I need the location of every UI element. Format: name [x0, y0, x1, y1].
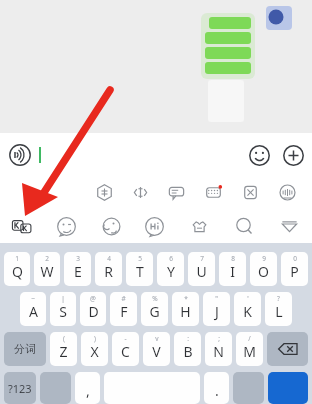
- button[interactable]: 3: [64, 252, 91, 286]
- staticText: ;: [218, 334, 220, 343]
- button[interactable]: ': [234, 292, 261, 326]
- button[interactable]: ): [81, 332, 108, 366]
- button[interactable]: Sticker tool 1: [0, 209, 44, 243]
- button[interactable]: 7: [188, 252, 215, 286]
- staticText: :: [187, 334, 189, 343]
- button[interactable]: ~: [20, 292, 46, 326]
- button[interactable]: Tool 4: [195, 177, 232, 207]
- staticText: S: [59, 302, 67, 321]
- button[interactable]: 6: [157, 252, 184, 286]
- button[interactable]: Sticker tool 4: [132, 209, 177, 243]
- button[interactable]: -: [112, 332, 139, 366]
- staticText: ': [247, 294, 249, 303]
- button[interactable]: Tool 2: [122, 177, 158, 207]
- button[interactable]: v: [143, 332, 170, 366]
- staticText: ?: [277, 294, 280, 303]
- staticText: 5: [138, 254, 142, 263]
- staticText: L: [275, 302, 283, 321]
- button[interactable]: 0: [281, 252, 308, 286]
- staticText: 9: [262, 254, 266, 263]
- button[interactable]: ,: [75, 372, 100, 404]
- staticText: ~: [31, 294, 35, 303]
- staticText: I: [230, 262, 235, 281]
- button[interactable]: /: [236, 332, 263, 366]
- staticText: X: [90, 342, 99, 361]
- staticText: A: [29, 302, 38, 321]
- staticText: 分词: [14, 342, 36, 356]
- staticText: /: [248, 334, 251, 343]
- staticText: 6: [169, 254, 173, 263]
- staticText: Y: [167, 262, 175, 281]
- button[interactable]: .: [204, 372, 229, 404]
- staticText: V: [152, 342, 161, 361]
- button[interactable]: Function key: [233, 372, 264, 404]
- staticText: v: [155, 334, 159, 343]
- staticText: U: [196, 262, 207, 281]
- button[interactable]: Function key: [40, 372, 71, 404]
- staticText: J: [215, 302, 219, 321]
- staticText: *: [184, 294, 188, 303]
- button[interactable]: Space: [104, 372, 200, 404]
- button[interactable]: *: [172, 292, 199, 326]
- button[interactable]: ?: [265, 292, 292, 326]
- staticText: C: [121, 342, 130, 361]
- staticText: 8: [231, 254, 235, 263]
- button[interactable]: ;: [205, 332, 232, 366]
- staticText: W: [40, 262, 54, 281]
- button[interactable]: Backspace: [267, 332, 308, 366]
- button[interactable]: 8: [219, 252, 246, 286]
- button[interactable]: Tool 5: [232, 177, 269, 207]
- button[interactable]: Tool 6: [269, 177, 306, 207]
- staticText: Z: [59, 342, 68, 361]
- button[interactable]: Sticker tool 6: [222, 209, 267, 243]
- staticText: F: [120, 302, 128, 321]
- staticText: ?123: [8, 381, 32, 396]
- staticText: G: [149, 302, 160, 321]
- button[interactable]: |: [50, 292, 76, 326]
- button[interactable]: Tool 1: [86, 177, 122, 207]
- button[interactable]: [36, 141, 238, 169]
- button[interactable]: (: [50, 332, 77, 366]
- staticText: 0: [293, 254, 297, 263]
- button[interactable]: :: [174, 332, 201, 366]
- button[interactable]: Sticker tool 3: [88, 209, 132, 243]
- staticText: ,: [86, 381, 90, 400]
- button[interactable]: More: [280, 142, 306, 168]
- button[interactable]: #: [110, 292, 137, 326]
- staticText: @: [90, 294, 96, 303]
- button[interactable]: 分词: [4, 332, 46, 366]
- staticText: H: [180, 302, 191, 321]
- button[interactable]: ?123: [4, 372, 36, 404]
- button[interactable]: Enter: [268, 372, 308, 404]
- button[interactable]: %: [141, 292, 168, 326]
- button[interactable]: Tool 3: [158, 177, 195, 207]
- staticText: 1: [15, 254, 19, 263]
- staticText: |: [61, 294, 65, 303]
- staticText: P: [290, 262, 299, 281]
- button[interactable]: 1: [4, 252, 30, 286]
- staticText: N: [213, 342, 224, 361]
- staticText: M: [243, 342, 256, 361]
- button[interactable]: 4: [95, 252, 122, 286]
- button[interactable]: Emoji: [246, 142, 272, 168]
- button[interactable]: 2: [34, 252, 60, 286]
- button[interactable]: Sticker tool 2: [44, 209, 88, 243]
- staticText: %: [152, 294, 158, 303]
- button[interactable]: Voice input: [7, 142, 33, 168]
- staticText: (: [63, 334, 65, 343]
- staticText: B: [183, 342, 193, 361]
- staticText: 2: [45, 254, 49, 263]
- button[interactable]: @: [80, 292, 106, 326]
- staticText: 7: [200, 254, 204, 263]
- staticText: D: [88, 302, 99, 321]
- staticText: O: [258, 262, 269, 281]
- button[interactable]: Sticker tool 5: [177, 209, 222, 243]
- button[interactable]: 5: [126, 252, 153, 286]
- button[interactable]: ": [203, 292, 230, 326]
- button[interactable]: 9: [250, 252, 277, 286]
- staticText: -: [124, 334, 127, 343]
- staticText: R: [104, 262, 113, 281]
- staticText: 4: [107, 254, 111, 263]
- staticText: ": [215, 294, 218, 303]
- button[interactable]: Sticker tool 7: [267, 209, 312, 243]
